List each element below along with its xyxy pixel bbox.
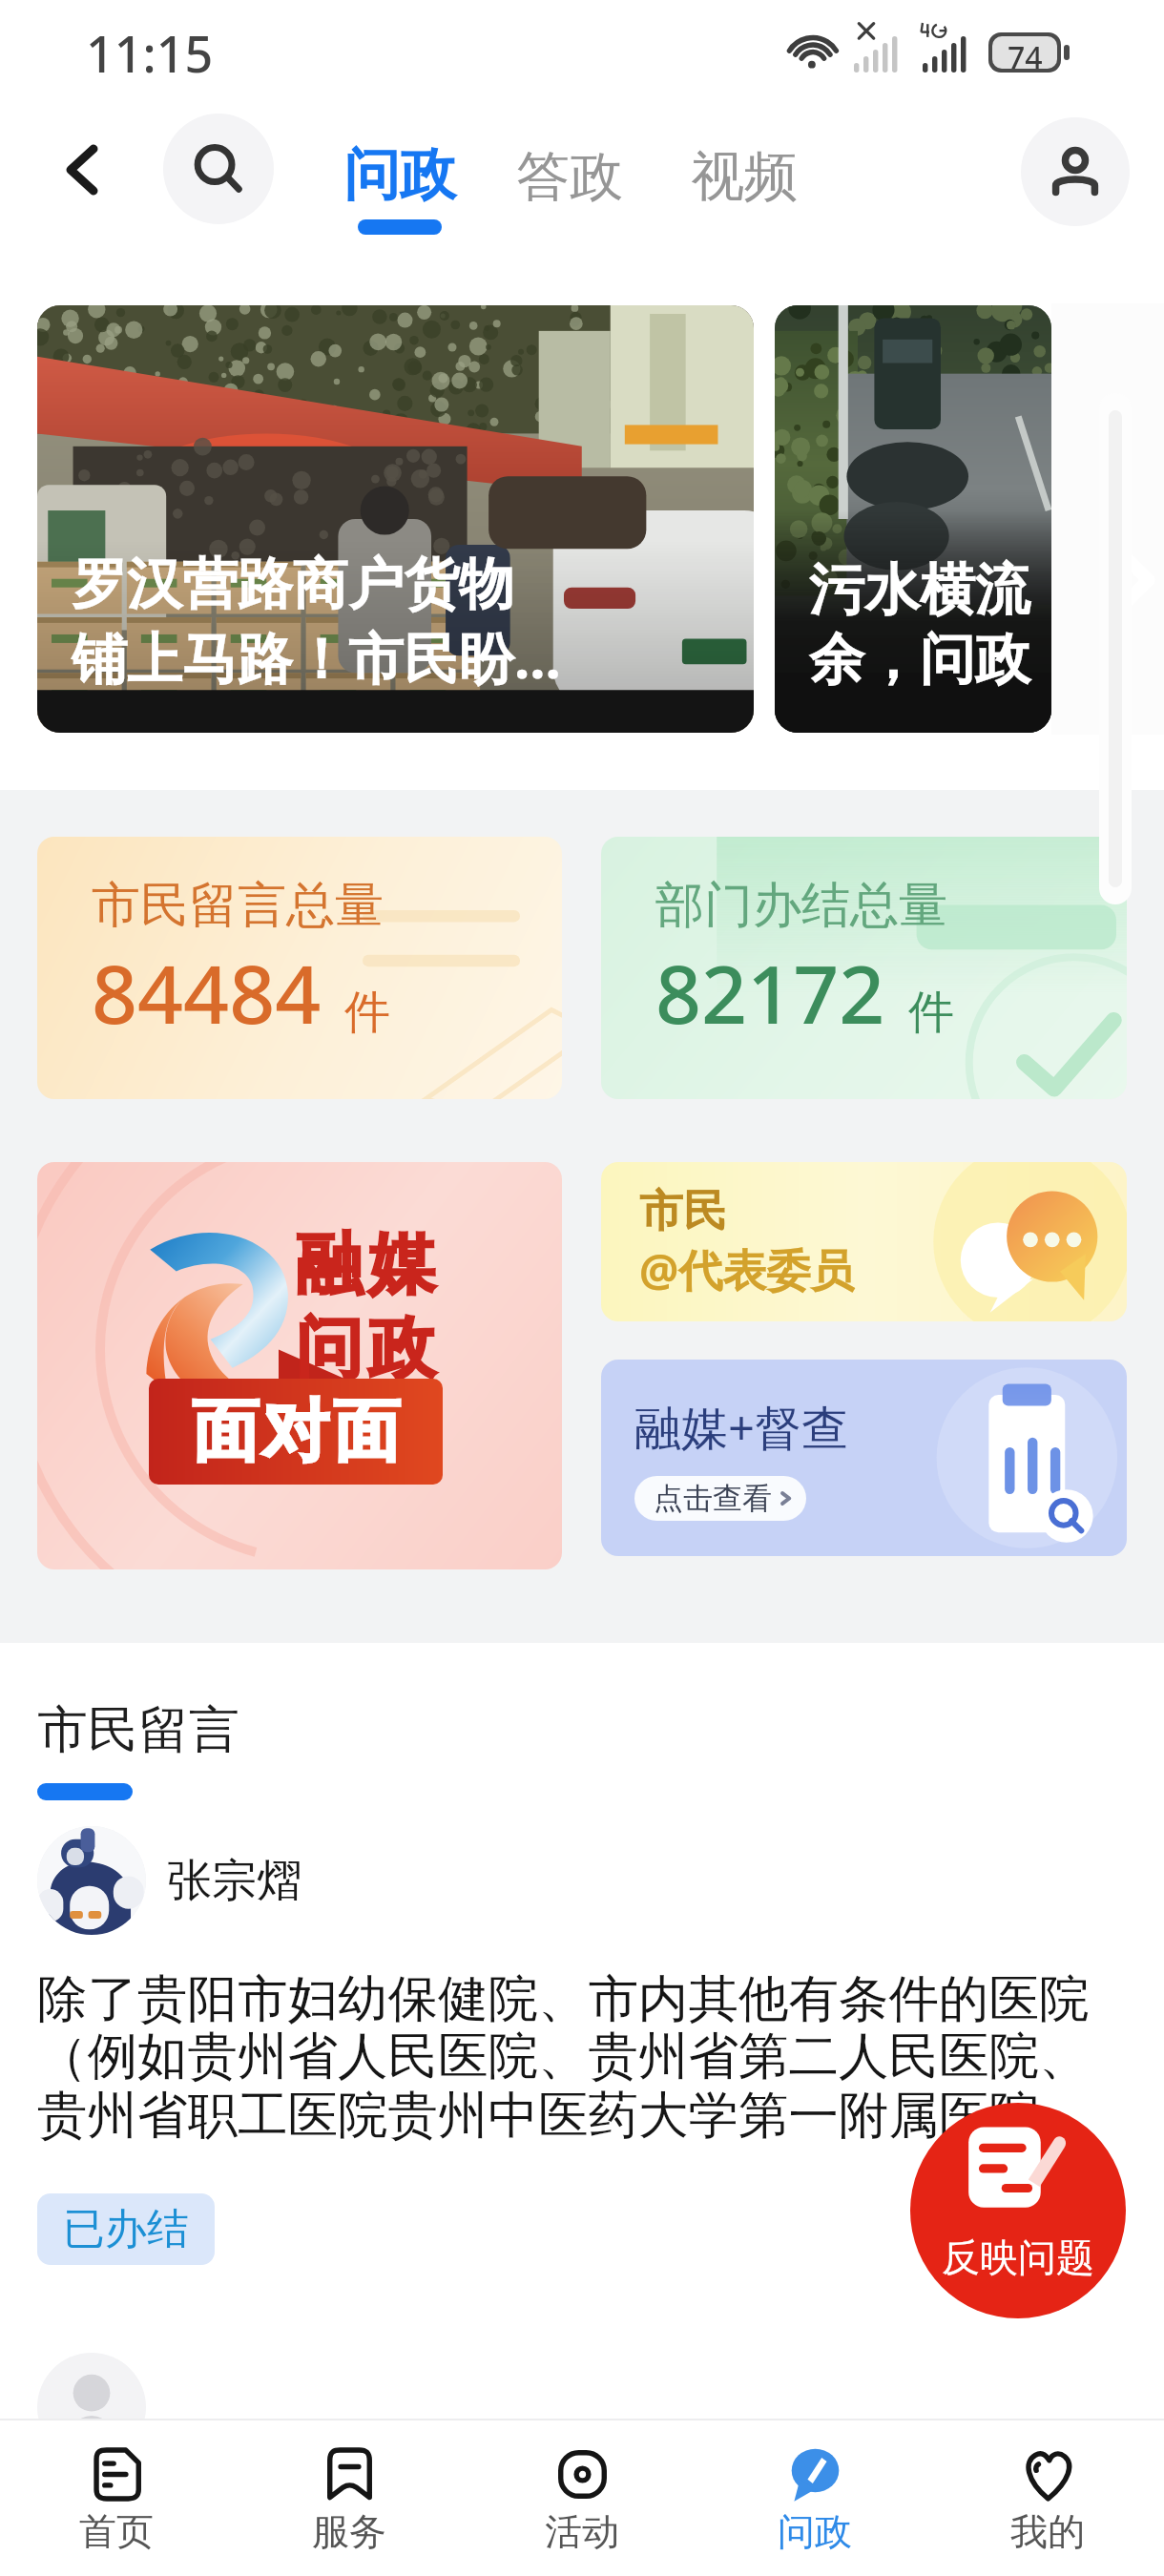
staticText: 服务	[312, 2508, 386, 2555]
staticText: 问政	[778, 2508, 852, 2555]
button[interactable]: 已办结	[37, 2193, 215, 2265]
staticText: 活动	[545, 2508, 619, 2555]
button[interactable]: 部门办结总量	[601, 837, 1127, 1099]
button[interactable]: Back	[44, 130, 124, 210]
staticText: 融媒	[293, 1223, 438, 1307]
staticText: 余，问政说	[809, 625, 1051, 695]
staticText: 我的	[1010, 2508, 1085, 2555]
button[interactable]: 市民留言总量	[37, 837, 562, 1099]
button[interactable]: 答政	[516, 143, 623, 211]
staticText: 污水横流半	[809, 555, 1051, 625]
button[interactable]: 视频	[691, 143, 798, 211]
staticText: 面对面	[190, 1390, 402, 1474]
staticText: 件	[344, 984, 390, 1041]
staticText: 82172	[655, 938, 885, 1047]
button[interactable]: 融媒	[37, 1162, 562, 1569]
button[interactable]: 问政	[698, 2420, 931, 2576]
staticText: 已办结	[63, 2203, 189, 2255]
staticText: 视频	[691, 143, 798, 211]
button[interactable]: 服务	[233, 2420, 466, 2576]
staticText: 反映问题	[942, 2233, 1094, 2281]
button[interactable]: 污水横流半	[775, 305, 1051, 733]
staticText: 件	[908, 984, 954, 1041]
button[interactable]: 融媒+督查	[601, 1360, 1127, 1556]
button[interactable]: 罗汉营路商户货物	[37, 305, 754, 733]
button[interactable]: 点击查看	[634, 1476, 806, 1521]
staticText: 融媒+督查	[634, 1395, 849, 1459]
staticText: 首页	[79, 2508, 154, 2555]
staticText: 84484	[92, 938, 322, 1047]
button[interactable]: 反映问题	[910, 2103, 1126, 2318]
staticText: 张宗熠	[167, 1853, 301, 1909]
staticText: 问政	[343, 139, 456, 210]
button[interactable]: Search	[163, 114, 274, 224]
staticText: @代表委员	[639, 1239, 855, 1299]
staticText: 74	[1008, 36, 1043, 69]
button[interactable]: Profile	[1021, 117, 1130, 226]
staticText: 答政	[516, 143, 623, 211]
staticText: 除了贵阳市妇幼保健院、市内其他有条件的医院（例如贵州省人民医院、贵州省第二人民医…	[37, 1967, 1127, 2148]
button[interactable]: 张宗熠	[37, 1826, 301, 1935]
button[interactable]: 我的	[931, 2420, 1164, 2576]
staticText: 市民留言总量	[92, 875, 384, 936]
staticText: 11:15	[86, 19, 214, 87]
staticText: 部门办结总量	[655, 875, 947, 936]
button[interactable]: 活动	[466, 2420, 698, 2576]
staticText: 铺上马路！市民盼...	[72, 619, 561, 695]
button[interactable]: 问政	[343, 139, 456, 235]
staticText: 市民留言	[37, 1698, 239, 1762]
button[interactable]: 市民	[601, 1162, 1127, 1321]
staticText: 市民	[639, 1184, 727, 1239]
staticText: 问政	[293, 1307, 438, 1391]
staticText: 点击查看	[654, 1480, 772, 1517]
button[interactable]: 首页	[0, 2420, 233, 2576]
staticText: 罗汉营路商户货物	[72, 550, 514, 619]
